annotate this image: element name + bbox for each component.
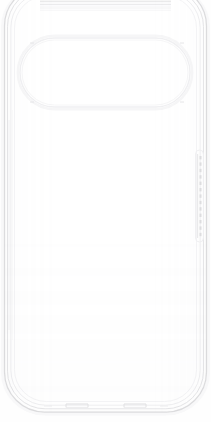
button[interactable]: Clear phone case product photo: [0, 0, 211, 422]
